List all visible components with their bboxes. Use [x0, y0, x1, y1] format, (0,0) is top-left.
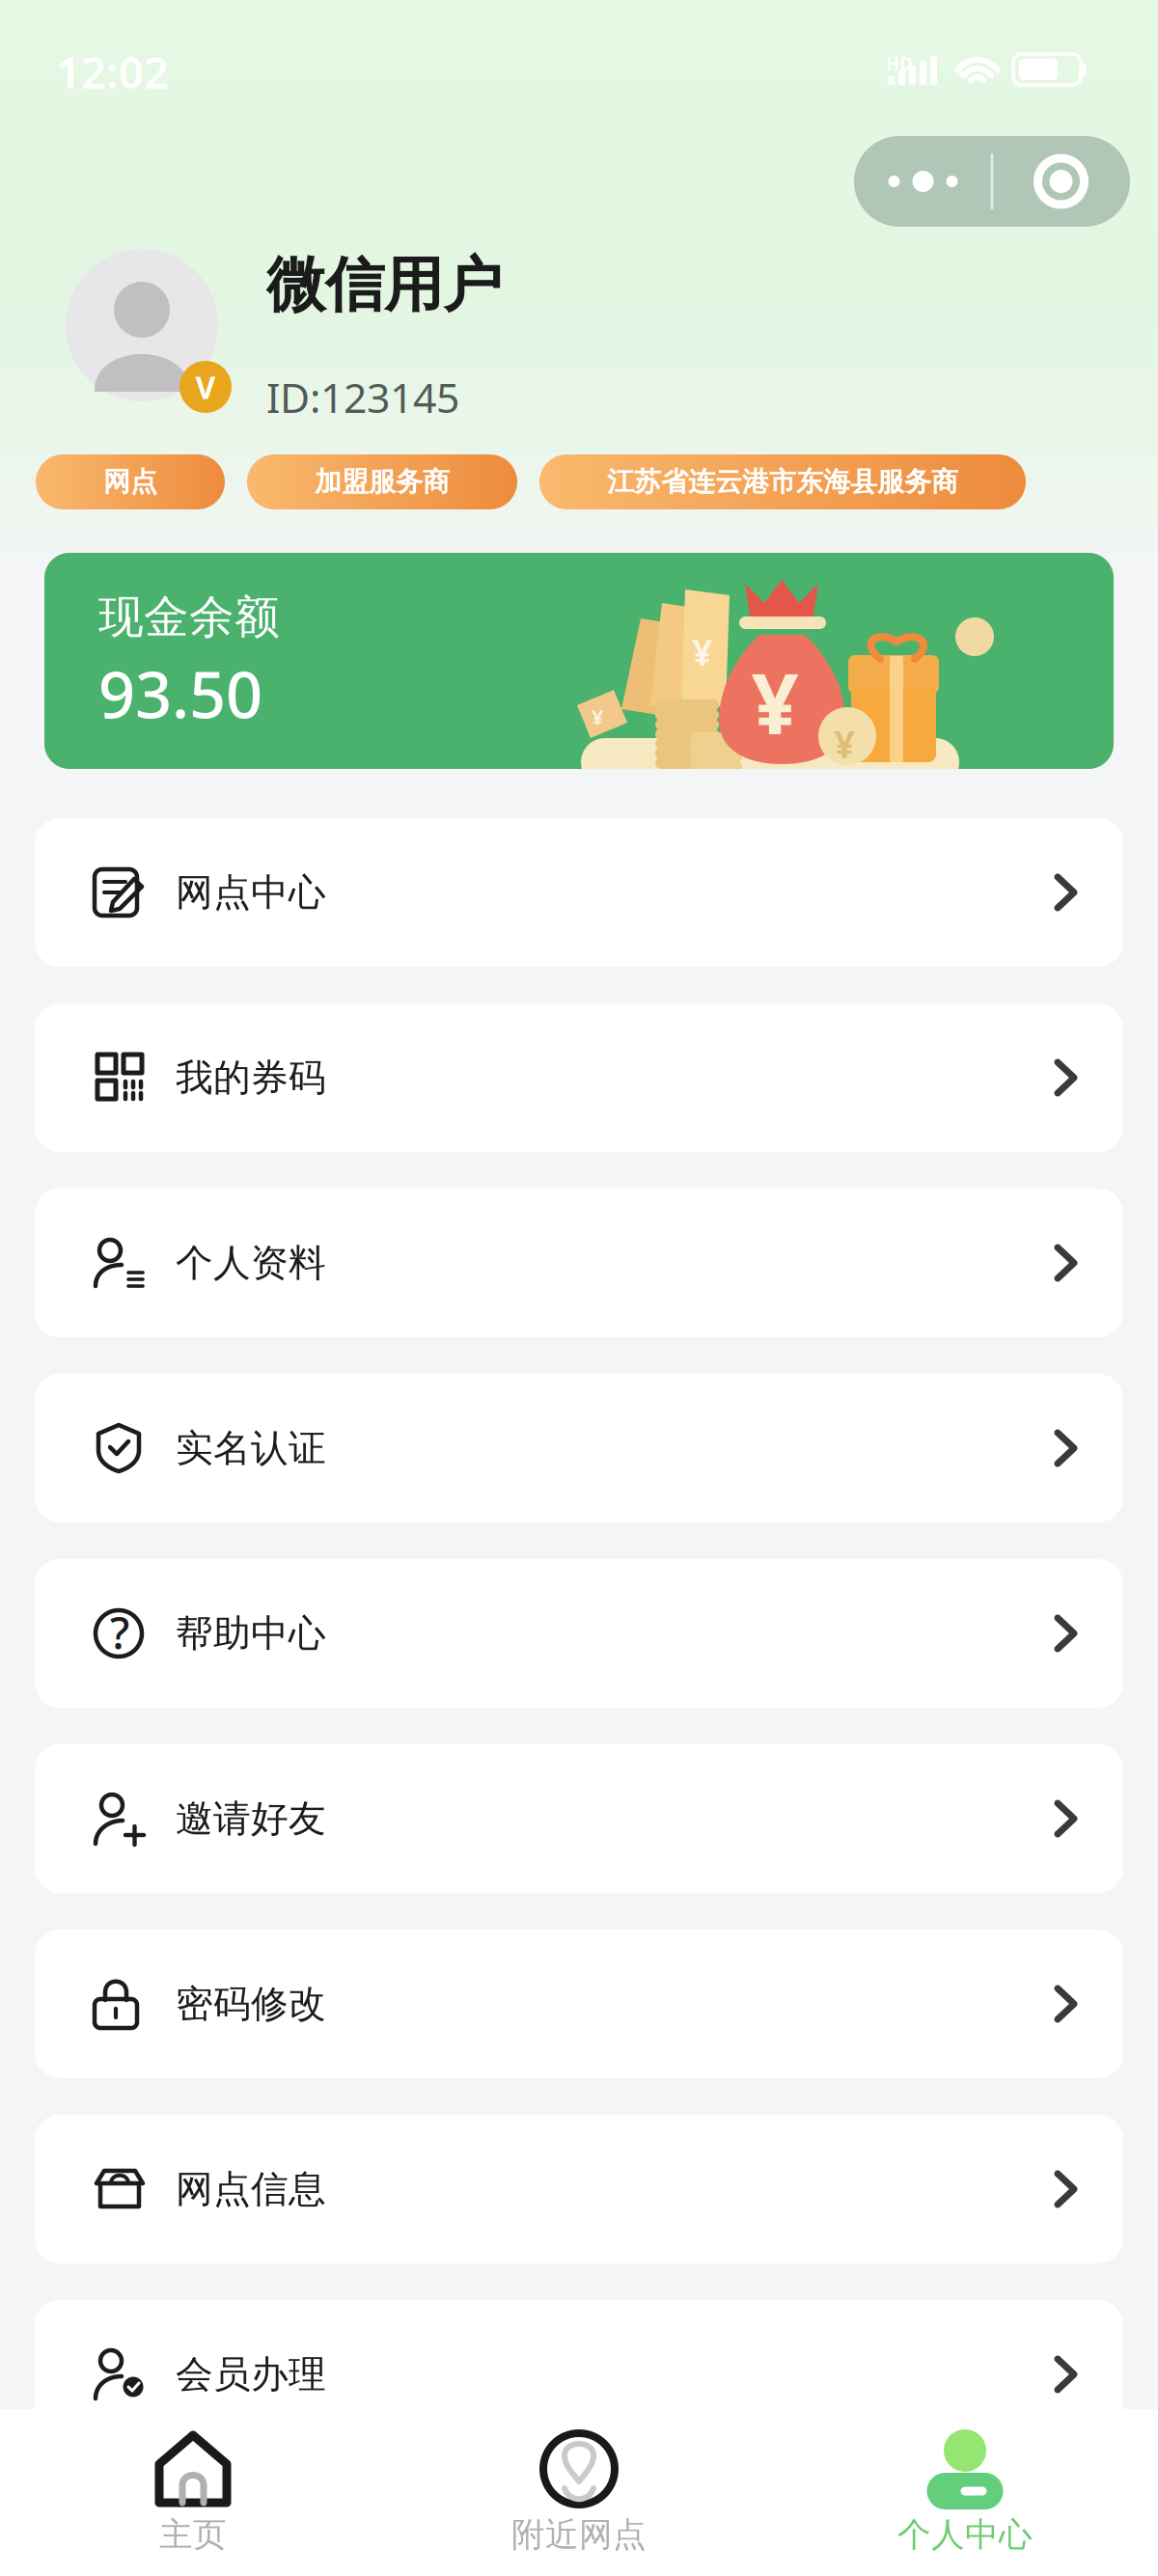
button[interactable]: 网点信息 — [35, 2115, 1123, 2263]
button[interactable]: 密码修改 — [35, 1930, 1123, 2078]
staticText: ? — [110, 1603, 129, 1661]
button[interactable]: ? — [35, 1559, 1123, 1708]
button[interactable]: 网点中心 — [35, 818, 1123, 967]
staticText: 实名认证 — [176, 1425, 326, 1471]
staticText: ¥ — [692, 628, 712, 676]
staticText: 加盟服务商 — [315, 465, 450, 499]
staticText: 12:02 — [56, 42, 169, 101]
staticText: ID:123145 — [266, 370, 459, 424]
button[interactable]: 我的券码 — [35, 1003, 1123, 1152]
staticText: ¥ — [751, 645, 799, 758]
staticText: ¥ — [592, 703, 603, 731]
button[interactable]: 个人中心 — [772, 2429, 1158, 2555]
staticText: 江苏省连云港市东海县服务商 — [607, 465, 958, 499]
staticText: 主页 — [159, 2514, 227, 2555]
staticText: 帮助中心 — [176, 1611, 326, 1656]
staticText: 现金余额 — [98, 589, 280, 645]
staticText: 网点 — [103, 465, 157, 499]
staticText: 网点信息 — [176, 2166, 326, 2212]
staticText: 附近网点 — [511, 2514, 647, 2555]
staticText: 我的券码 — [176, 1055, 326, 1101]
staticText: 个人资料 — [176, 1240, 326, 1286]
staticText: ¥ — [834, 719, 855, 768]
staticText: 93.50 — [98, 651, 262, 736]
button[interactable]: 邀请好友 — [35, 1744, 1123, 1893]
staticText: HD — [886, 51, 913, 75]
staticText: V — [195, 366, 216, 407]
staticText: 会员办理 — [176, 2351, 326, 2397]
button[interactable]: 主页 — [0, 2429, 386, 2555]
staticText: 邀请好友 — [176, 1796, 326, 1842]
button[interactable]: 会员办理 — [35, 2300, 1123, 2449]
button[interactable]: 附近网点 — [386, 2429, 772, 2555]
staticText: 密码修改 — [176, 1981, 326, 2027]
staticText: 微信用户 — [266, 249, 502, 322]
button[interactable]: 实名认证 — [35, 1374, 1123, 1522]
staticText: 网点中心 — [176, 870, 326, 915]
staticText: 个人中心 — [897, 2514, 1033, 2555]
button[interactable]: 个人资料 — [35, 1189, 1123, 1337]
